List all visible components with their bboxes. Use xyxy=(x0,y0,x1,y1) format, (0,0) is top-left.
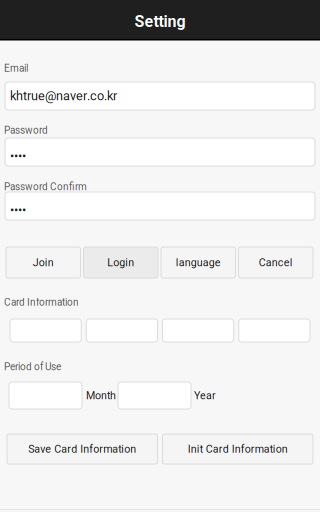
button[interactable]: Text field xyxy=(9,382,82,409)
button[interactable]: Save Card Information xyxy=(7,434,157,464)
staticText: Email xyxy=(4,62,28,74)
button[interactable]: Text field xyxy=(118,382,191,409)
staticText: language xyxy=(176,256,221,269)
button[interactable]: Text field xyxy=(162,319,234,342)
button[interactable]: Text field xyxy=(239,319,310,342)
staticText: Password Confirm xyxy=(4,181,87,193)
staticText: •••• xyxy=(10,203,26,217)
staticText: Save Card Information xyxy=(28,443,136,455)
button[interactable]: Init Card Information xyxy=(162,434,313,464)
staticText: Join xyxy=(33,256,54,269)
button[interactable]: language xyxy=(161,247,235,278)
staticText: khtrue@naver.co.kr xyxy=(10,89,117,103)
button[interactable]: Login xyxy=(83,247,158,278)
button[interactable]: Cancel xyxy=(238,247,313,278)
button[interactable]: •••• xyxy=(5,192,315,220)
staticText: Year xyxy=(194,389,216,402)
button[interactable]: Join xyxy=(6,247,80,278)
staticText: Password xyxy=(4,124,48,136)
staticText: Login xyxy=(107,256,134,269)
staticText: Setting xyxy=(134,12,185,31)
staticText: •••• xyxy=(10,149,26,163)
button[interactable]: •••• xyxy=(5,138,315,166)
staticText: Month xyxy=(86,389,116,402)
button[interactable]: khtrue@naver.co.kr xyxy=(5,82,315,110)
staticText: Cancel xyxy=(259,256,293,269)
staticText: Period of Use xyxy=(4,361,61,373)
button[interactable]: Text field xyxy=(10,319,81,342)
staticText: Card Information xyxy=(4,296,79,308)
button[interactable]: Text field xyxy=(86,319,157,342)
staticText: Init Card Information xyxy=(188,443,288,455)
